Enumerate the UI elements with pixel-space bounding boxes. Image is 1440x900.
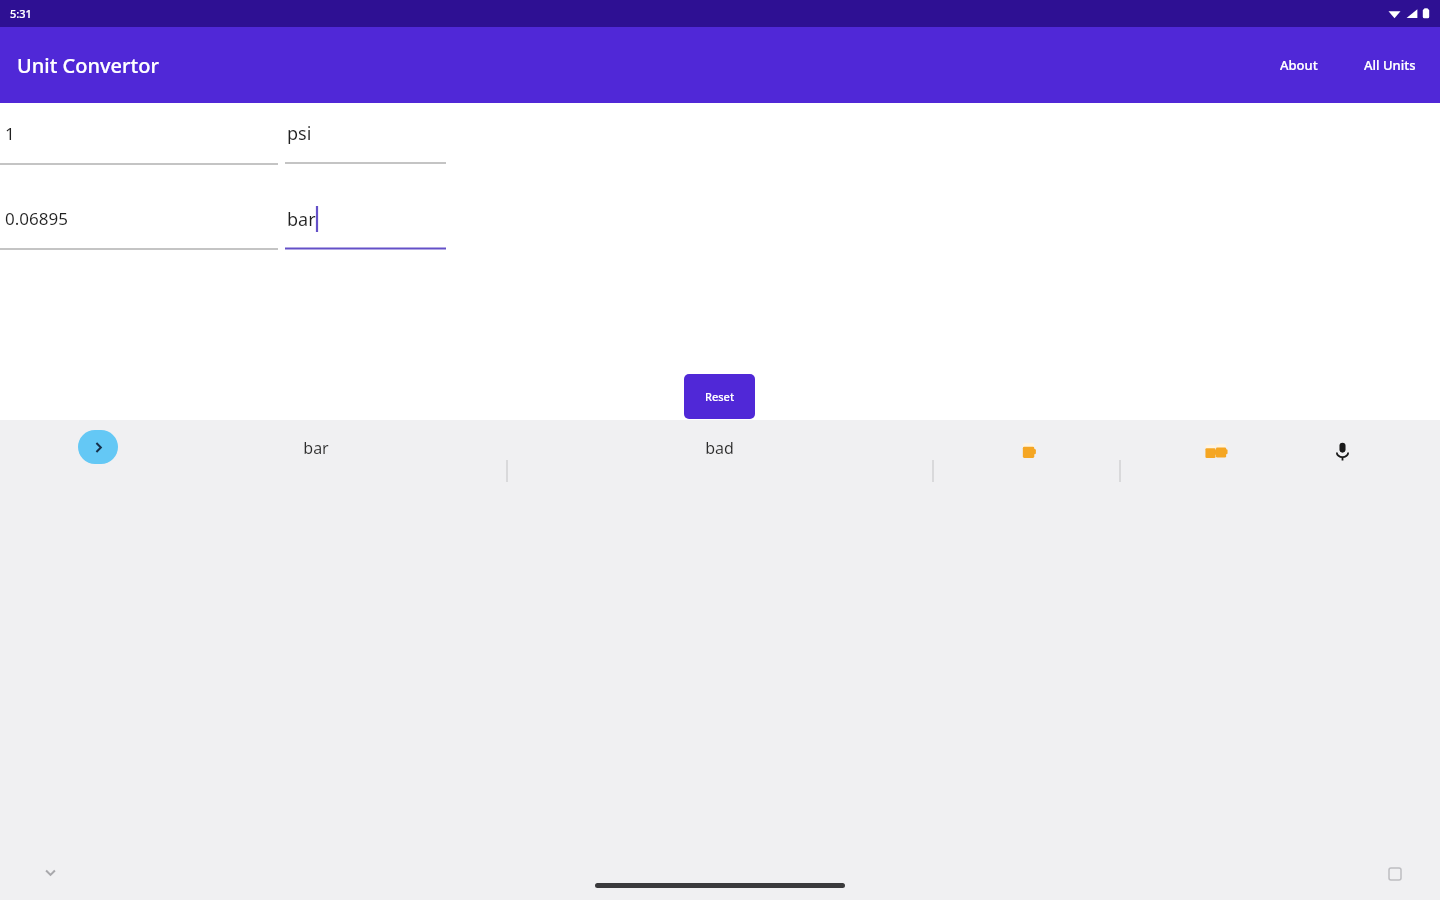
button[interactable]: Keyboard settings xyxy=(1380,859,1410,889)
staticText: bad xyxy=(705,437,734,459)
button[interactable]: Expand suggestions xyxy=(78,430,118,464)
staticText: About xyxy=(1280,56,1318,74)
button[interactable]: Reset xyxy=(684,374,755,419)
button[interactable]: All Units xyxy=(1354,48,1426,82)
button[interactable]: About xyxy=(1270,48,1328,82)
staticText: 1 xyxy=(5,122,15,145)
button[interactable]: Voice input xyxy=(1323,432,1361,470)
button[interactable]: Hide keyboard xyxy=(33,855,67,889)
staticText: psi xyxy=(287,121,312,146)
staticText: bar xyxy=(303,437,329,459)
staticText: 5:31 xyxy=(10,6,32,21)
button[interactable]: bar xyxy=(285,202,446,250)
staticText: Reset xyxy=(705,389,735,404)
staticText: bar xyxy=(287,207,316,232)
button[interactable]: psi xyxy=(285,117,446,165)
button[interactable]: 1 xyxy=(0,117,278,165)
button[interactable]: Beer emoji xyxy=(1001,430,1057,470)
button[interactable]: Cheers emoji xyxy=(1188,430,1244,470)
staticText: All Units xyxy=(1364,56,1416,74)
staticText: Unit Convertor xyxy=(17,52,159,79)
button[interactable]: bar xyxy=(246,428,386,468)
button[interactable]: bad xyxy=(649,428,789,468)
button[interactable]: 0.06895 xyxy=(0,202,278,250)
staticText: 0.06895 xyxy=(5,207,68,230)
